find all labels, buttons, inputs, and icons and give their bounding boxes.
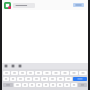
button[interactable]: Settings (18, 64, 22, 68)
button[interactable] (22, 83, 28, 87)
button[interactable] (41, 77, 48, 81)
button[interactable] (33, 77, 40, 81)
button[interactable] (70, 71, 78, 75)
button[interactable]: Clipboard (4, 64, 8, 68)
button[interactable] (36, 83, 42, 87)
button[interactable] (61, 71, 69, 75)
button[interactable] (13, 3, 35, 8)
button[interactable] (19, 71, 26, 75)
button[interactable] (73, 3, 84, 7)
button[interactable]: Shift (3, 83, 13, 87)
button[interactable] (27, 71, 34, 75)
button[interactable] (65, 77, 72, 81)
button[interactable] (57, 83, 63, 87)
button[interactable] (35, 71, 42, 75)
button[interactable] (14, 83, 21, 87)
button[interactable] (43, 83, 49, 87)
button[interactable] (52, 71, 60, 75)
button[interactable] (3, 71, 10, 75)
button[interactable] (29, 83, 35, 87)
button[interactable] (79, 71, 87, 75)
button[interactable]: Enter (73, 77, 87, 81)
button[interactable] (64, 83, 70, 87)
button[interactable] (17, 77, 24, 81)
button[interactable] (25, 77, 32, 81)
button[interactable]: Voice input (11, 64, 15, 68)
button[interactable] (43, 71, 51, 75)
button[interactable] (49, 77, 56, 81)
button[interactable] (57, 77, 64, 81)
button[interactable] (11, 71, 18, 75)
button[interactable] (71, 83, 77, 87)
button[interactable] (50, 83, 56, 87)
button[interactable] (3, 77, 9, 81)
button[interactable]: Backspace (78, 83, 87, 87)
button[interactable] (10, 77, 16, 81)
button[interactable]: App icon (4, 2, 11, 9)
